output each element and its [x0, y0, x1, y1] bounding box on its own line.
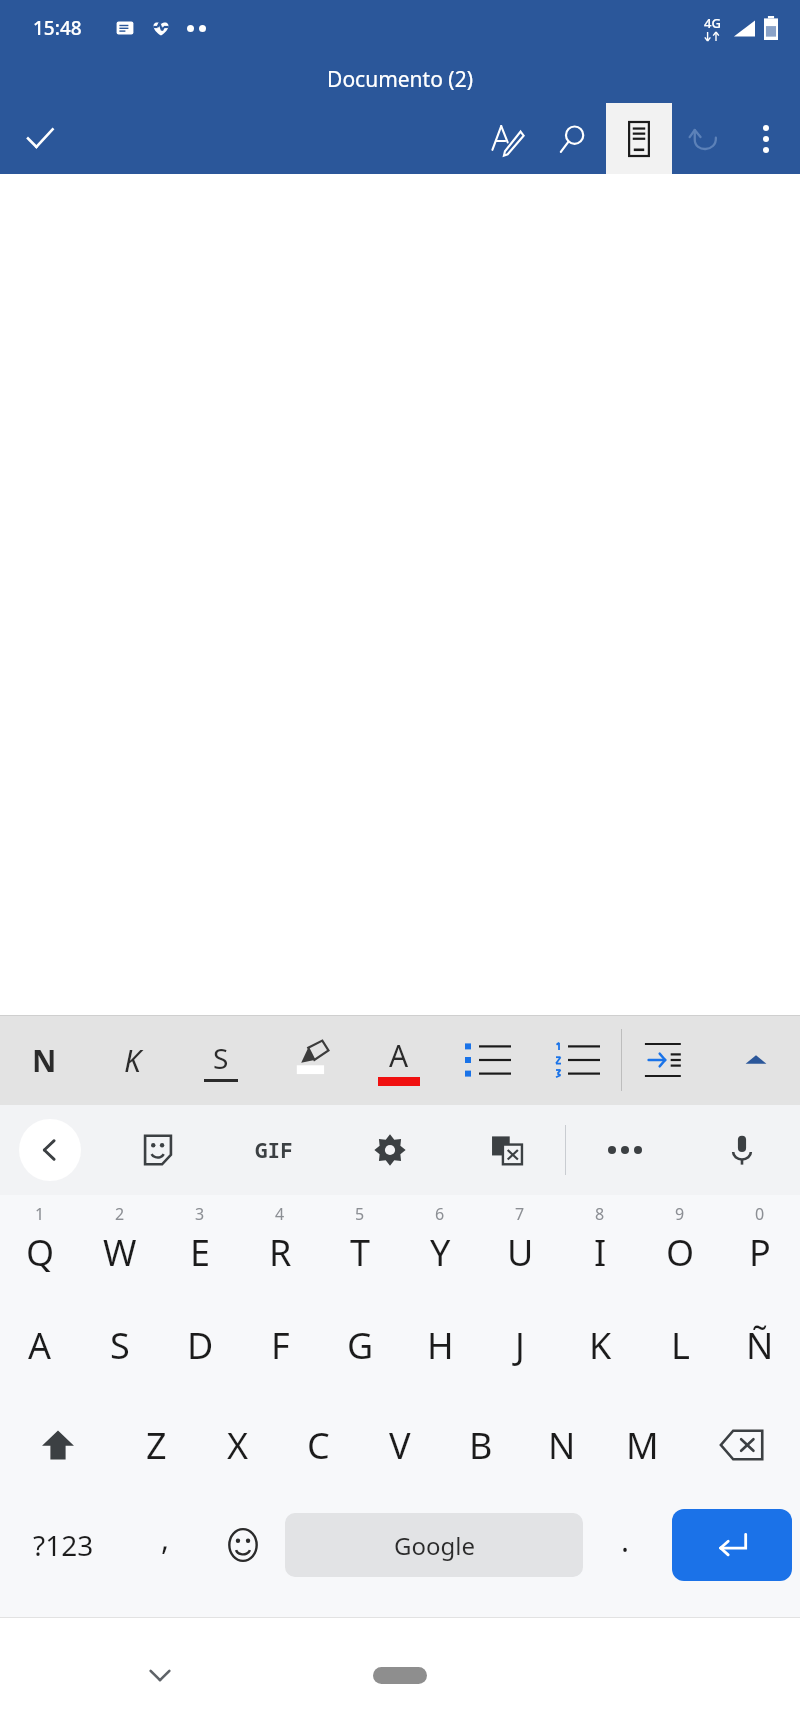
staticText: G — [347, 1321, 374, 1370]
button[interactable]: 7 — [480, 1195, 560, 1295]
staticText: F — [271, 1321, 290, 1370]
staticText: W — [103, 1228, 137, 1277]
button[interactable]: A — [0, 1295, 80, 1395]
button[interactable]: 1 — [0, 1195, 80, 1295]
staticText: H — [427, 1321, 454, 1370]
button[interactable]: Backspace — [683, 1395, 800, 1495]
staticText: 4 — [275, 1203, 285, 1225]
staticText: P — [749, 1228, 771, 1277]
staticText: Google — [394, 1529, 475, 1562]
button[interactable]: Font color — [354, 1015, 443, 1105]
button[interactable]: X — [197, 1395, 278, 1495]
button[interactable]: Undo — [672, 103, 738, 174]
button[interactable]: D — [160, 1295, 240, 1395]
staticText: Q — [26, 1228, 55, 1277]
staticText: K — [589, 1321, 612, 1370]
button[interactable]: 2 — [80, 1195, 160, 1295]
staticText: J — [515, 1321, 525, 1370]
staticText: A — [28, 1321, 52, 1370]
button[interactable]: Stickers — [100, 1105, 216, 1195]
button[interactable]: Bold — [0, 1015, 88, 1105]
button[interactable]: Translate — [448, 1105, 565, 1195]
staticText: 3 — [195, 1203, 205, 1225]
staticText: S — [110, 1321, 130, 1370]
button[interactable]: 3 — [160, 1195, 240, 1295]
staticText: , — [161, 1518, 170, 1559]
button[interactable]: Settings — [332, 1105, 448, 1195]
button[interactable]: Ñ — [720, 1295, 800, 1395]
staticText: 1 — [35, 1203, 45, 1225]
button[interactable]: More options — [738, 103, 794, 174]
button[interactable]: Emoji — [204, 1495, 281, 1595]
staticText: U — [507, 1228, 534, 1277]
button[interactable]: H — [400, 1295, 480, 1395]
staticText: B — [469, 1421, 493, 1470]
button[interactable]: Bulleted list — [443, 1015, 532, 1105]
staticText: V — [389, 1421, 411, 1470]
button[interactable]: Edit text — [474, 103, 540, 174]
staticText: . — [621, 1520, 630, 1561]
button[interactable]: Voice input — [683, 1105, 800, 1195]
button[interactable]: F — [240, 1295, 320, 1395]
button[interactable]: Done — [12, 111, 68, 167]
button[interactable]: Google — [285, 1513, 583, 1577]
button[interactable]: 5 — [320, 1195, 400, 1295]
button[interactable]: 9 — [640, 1195, 720, 1295]
staticText: Ñ — [746, 1321, 774, 1370]
staticText: K — [124, 1040, 141, 1081]
button[interactable]: Enter — [672, 1509, 792, 1581]
staticText: 7 — [515, 1203, 525, 1225]
button[interactable]: More — [566, 1105, 683, 1195]
button[interactable]: S — [80, 1295, 160, 1395]
button[interactable]: Numbered list — [532, 1015, 621, 1105]
button[interactable]: . — [587, 1495, 664, 1595]
staticText: 8 — [595, 1203, 605, 1225]
staticText: D — [187, 1321, 214, 1370]
button[interactable]: Search — [540, 103, 606, 174]
button[interactable]: 0 — [720, 1195, 800, 1295]
staticText: O — [666, 1228, 695, 1277]
button[interactable]: Shift — [0, 1395, 116, 1495]
staticText: Y — [430, 1228, 451, 1277]
staticText: ?123 — [33, 1526, 94, 1564]
button[interactable]: Back — [0, 1105, 100, 1195]
button[interactable]: 8 — [560, 1195, 640, 1295]
staticText: R — [269, 1228, 292, 1277]
button[interactable]: GIF — [216, 1105, 332, 1195]
button[interactable]: Home — [346, 1661, 454, 1689]
button[interactable]: J — [480, 1295, 560, 1395]
button[interactable]: ?123 — [0, 1495, 127, 1595]
staticText: 2 — [115, 1203, 125, 1225]
staticText: 9 — [675, 1203, 685, 1225]
button[interactable]: 6 — [400, 1195, 480, 1295]
staticText: A — [389, 1035, 409, 1076]
button[interactable]: Hide keyboard — [130, 1645, 190, 1705]
staticText: Z — [146, 1421, 167, 1470]
staticText: 0 — [755, 1203, 765, 1225]
staticText: S — [213, 1039, 229, 1077]
button[interactable]: G — [320, 1295, 400, 1395]
button[interactable]: Collapse — [711, 1015, 800, 1105]
button[interactable]: M — [602, 1395, 683, 1495]
button[interactable]: B — [440, 1395, 521, 1495]
staticText: N — [548, 1421, 576, 1470]
staticText: 5 — [355, 1203, 365, 1225]
button[interactable]: L — [640, 1295, 720, 1395]
button[interactable]: V — [359, 1395, 440, 1495]
staticText: T — [350, 1228, 371, 1277]
button[interactable]: Z — [116, 1395, 197, 1495]
button[interactable]: C — [278, 1395, 359, 1495]
staticText: GIF — [255, 1136, 293, 1165]
staticText: C — [307, 1421, 330, 1470]
button[interactable]: Italic — [88, 1015, 176, 1105]
button[interactable]: Layout — [606, 103, 672, 174]
button[interactable]: Indent — [622, 1015, 711, 1105]
staticText: Documento (2) — [327, 65, 473, 94]
button[interactable]: , — [127, 1495, 204, 1595]
button[interactable]: Underline — [176, 1015, 265, 1105]
staticText: M — [626, 1421, 659, 1470]
button[interactable]: K — [560, 1295, 640, 1395]
button[interactable]: 4 — [240, 1195, 320, 1295]
button[interactable]: N — [521, 1395, 602, 1495]
button[interactable]: Highlight — [265, 1015, 354, 1105]
